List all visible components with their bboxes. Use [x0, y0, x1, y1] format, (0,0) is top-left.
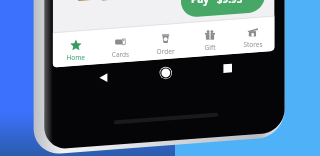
button[interactable]: Home	[54, 31, 98, 65]
button[interactable]: Order	[144, 25, 188, 59]
button[interactable]: Recents	[217, 57, 239, 79]
button[interactable]: Cards	[99, 28, 143, 62]
button[interactable]: Home	[155, 62, 177, 84]
button[interactable]: Pay	[183, 0, 262, 12]
button[interactable]: Stores	[231, 18, 275, 52]
button[interactable]: Back	[93, 67, 115, 89]
button[interactable]: Gift	[188, 21, 232, 55]
